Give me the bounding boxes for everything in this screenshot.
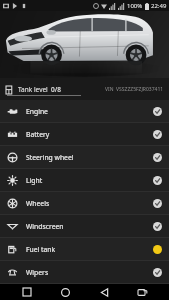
button[interactable]: Wheels xyxy=(0,192,169,214)
staticText: Fuel tank xyxy=(26,245,56,254)
button[interactable]: Wipers xyxy=(0,261,169,283)
staticText: Engine xyxy=(26,107,48,116)
button[interactable]: Recent apps xyxy=(16,284,38,300)
staticText: Tank level xyxy=(18,85,48,94)
staticText: Wheels xyxy=(26,199,50,208)
button[interactable]: Home xyxy=(54,284,76,300)
button[interactable]: Screenshot xyxy=(131,284,153,300)
button[interactable]: Tank level xyxy=(0,78,169,100)
staticText: VIN VSSZZZ5FZJR037411 xyxy=(105,86,164,93)
button[interactable]: Light xyxy=(0,169,169,191)
button[interactable]: Windscreen xyxy=(0,215,169,237)
button[interactable]: Engine xyxy=(0,100,169,122)
staticText: Battery xyxy=(26,130,50,139)
button[interactable]: Steering wheel xyxy=(0,146,169,168)
staticText: 100% xyxy=(127,2,143,10)
staticText: Light xyxy=(26,176,43,185)
staticText: Wipers xyxy=(26,268,49,277)
staticText: 22:49 xyxy=(151,2,167,10)
button[interactable]: Battery xyxy=(0,123,169,145)
staticText: Steering wheel xyxy=(26,153,74,162)
staticText: 0/8 xyxy=(51,85,61,94)
button[interactable]: Back xyxy=(93,284,115,300)
staticText: Windscreen xyxy=(26,222,64,231)
button[interactable]: Fuel tank xyxy=(0,238,169,260)
